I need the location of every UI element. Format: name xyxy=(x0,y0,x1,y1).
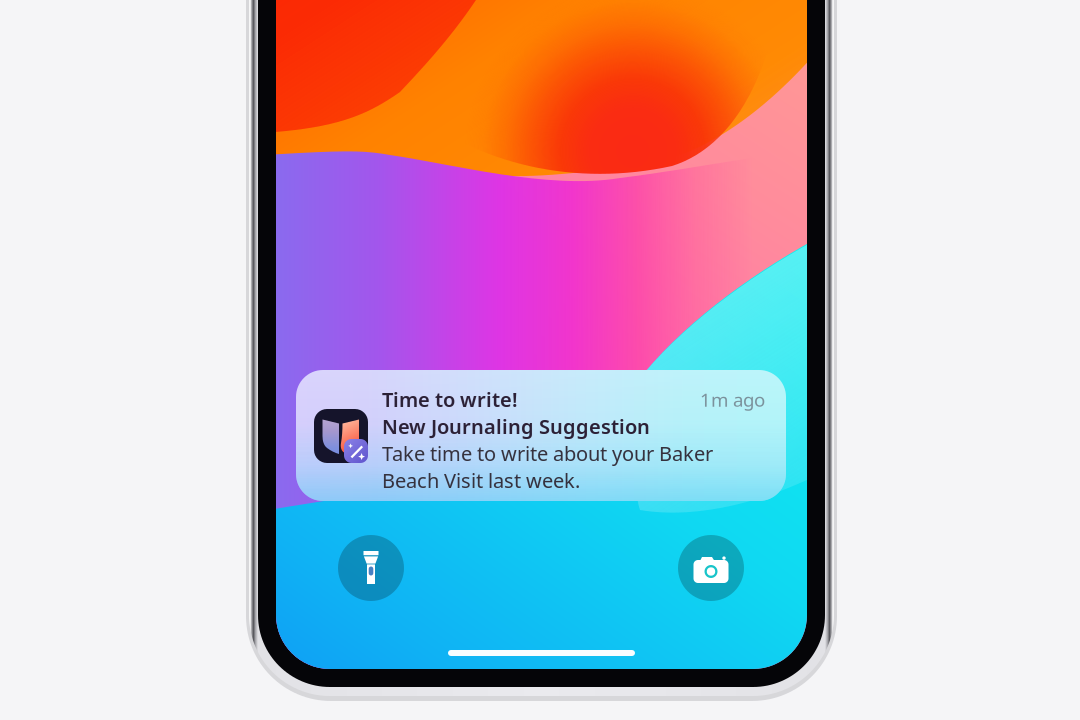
button[interactable]: Camera xyxy=(678,535,744,601)
button[interactable]: Time to write! xyxy=(296,370,786,501)
staticText: Take time to write about your Baker xyxy=(382,440,713,467)
staticText: Time to write! xyxy=(382,386,518,413)
staticText: New Journaling Suggestion xyxy=(382,413,650,440)
staticText: 1m ago xyxy=(700,387,765,412)
button[interactable]: Flashlight xyxy=(338,535,404,601)
staticText: Beach Visit last week. xyxy=(382,467,580,494)
